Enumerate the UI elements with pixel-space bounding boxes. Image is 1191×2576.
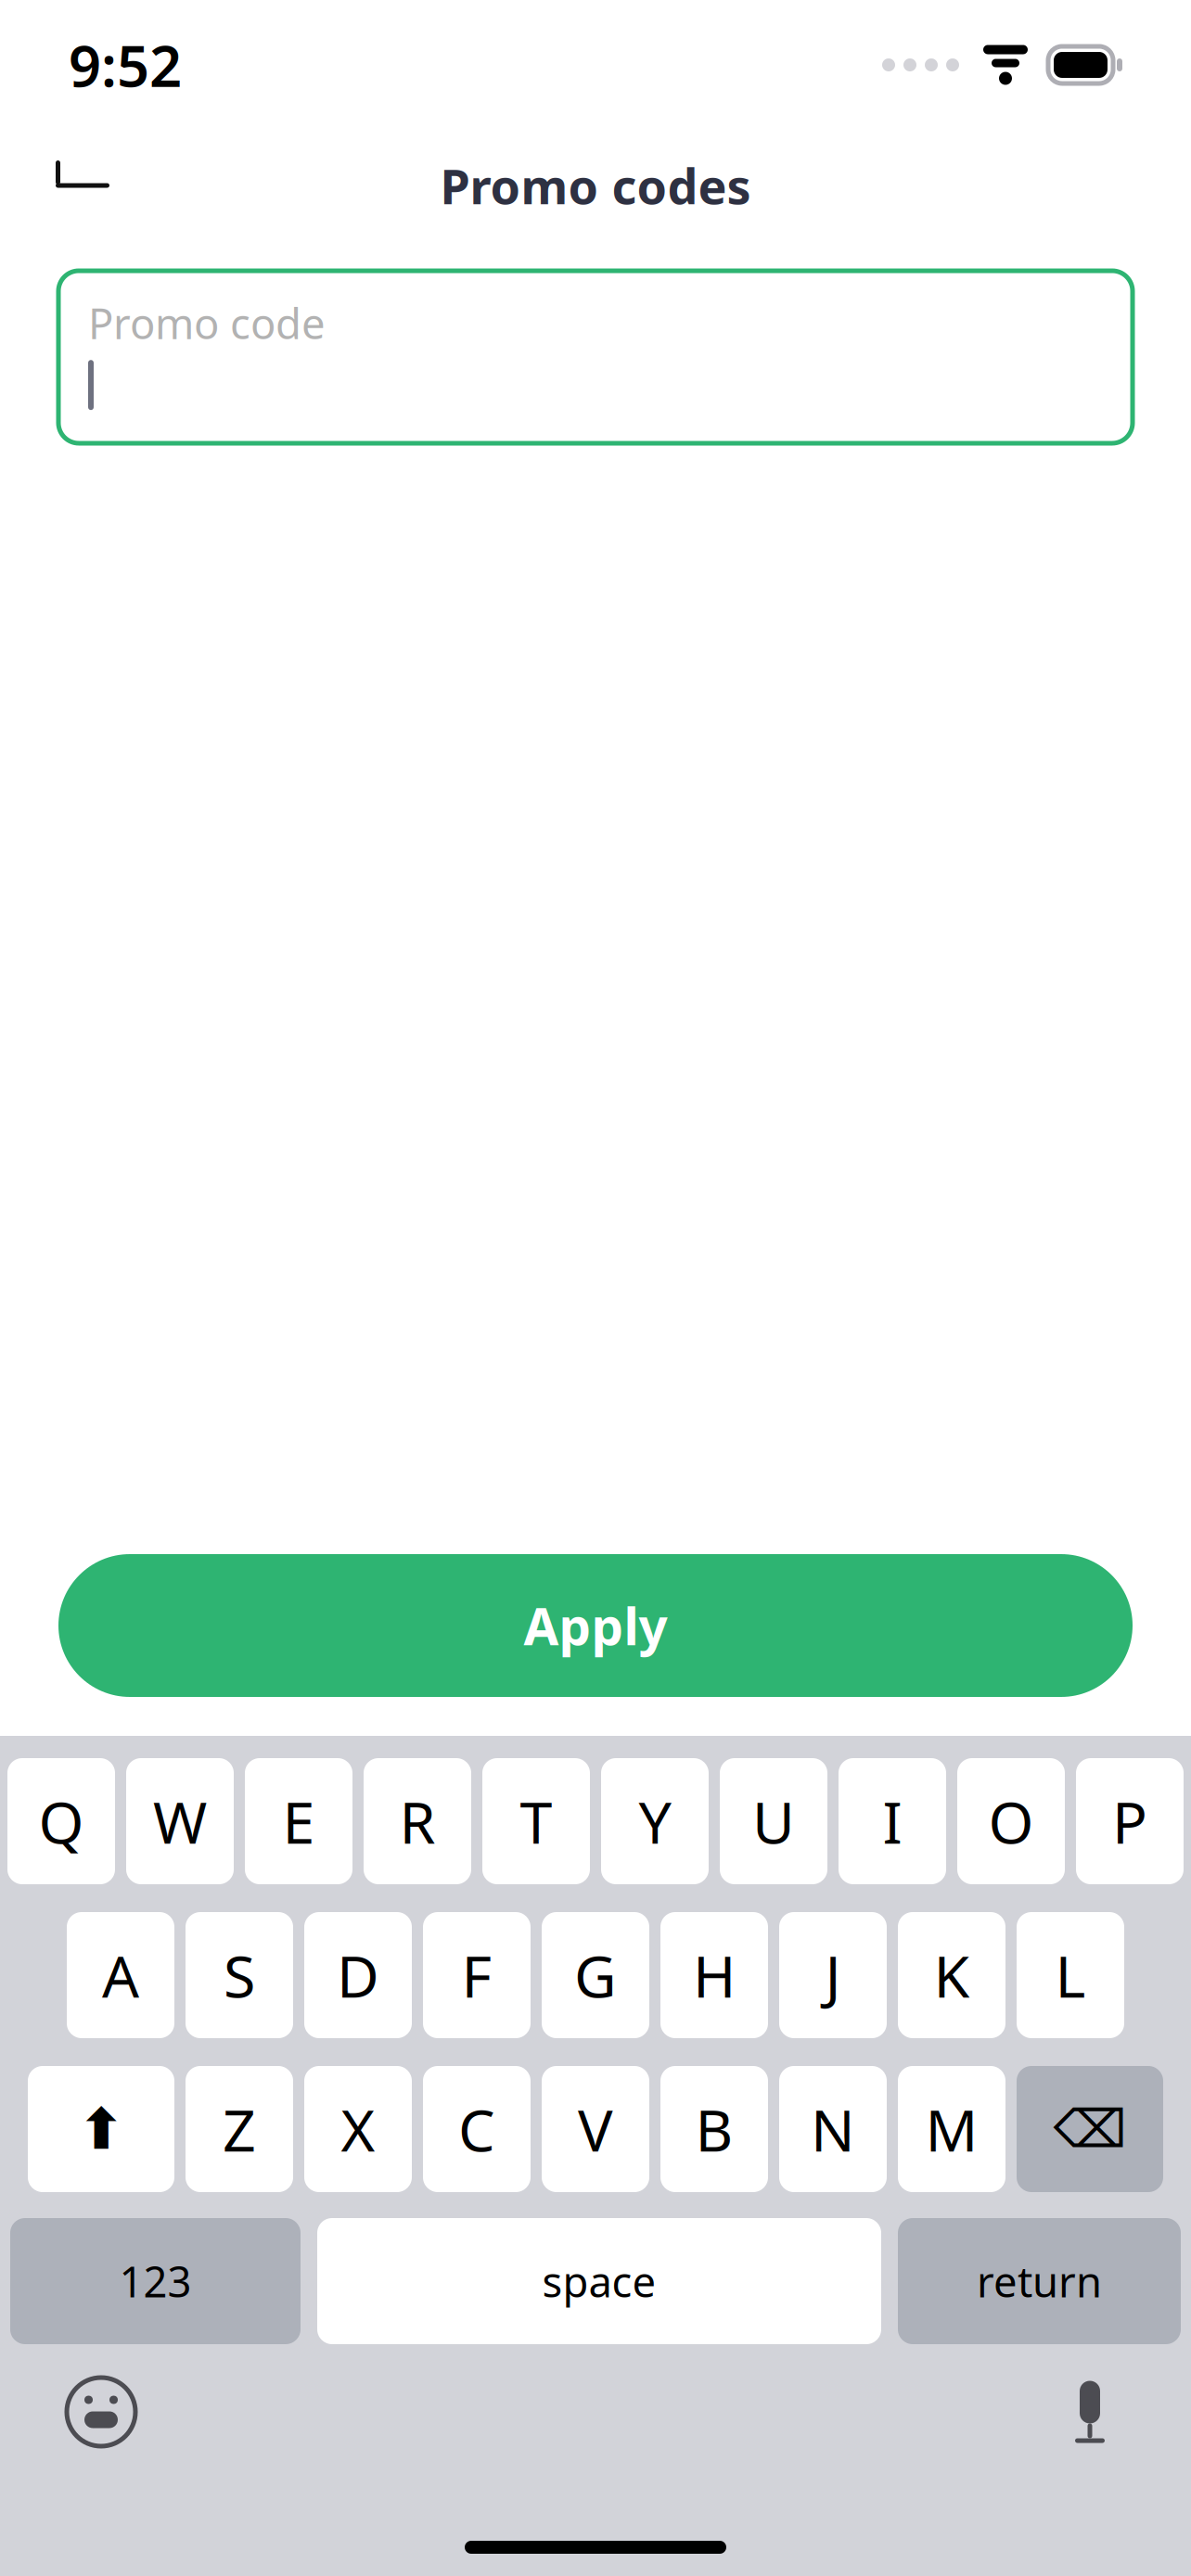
staticText: Y (639, 1783, 671, 1860)
button[interactable]: G (542, 1912, 649, 2038)
button[interactable]: T (482, 1758, 590, 1884)
button[interactable]: Emoji keyboard (50, 2361, 152, 2463)
button[interactable]: Back (39, 141, 134, 230)
button[interactable]: H (660, 1912, 768, 2038)
staticText: N (811, 2090, 855, 2168)
button[interactable]: J (779, 1912, 887, 2038)
button[interactable]: Delete (1017, 2066, 1163, 2192)
staticText: A (102, 1937, 139, 2014)
staticText: Promo codes (440, 153, 751, 218)
button[interactable]: return (898, 2218, 1181, 2344)
staticText: R (399, 1783, 435, 1860)
button[interactable]: P (1076, 1758, 1184, 1884)
staticText: C (458, 2090, 495, 2168)
staticText: M (925, 2090, 978, 2168)
button[interactable]: X (304, 2066, 412, 2192)
button[interactable]: U (720, 1758, 827, 1884)
button[interactable]: space (317, 2218, 881, 2344)
button[interactable]: Y (601, 1758, 709, 1884)
button[interactable]: S (186, 1912, 293, 2038)
staticText: W (153, 1783, 207, 1860)
staticText: G (574, 1937, 617, 2014)
button[interactable]: E (245, 1758, 352, 1884)
button[interactable]: V (542, 2066, 649, 2192)
button[interactable]: K (898, 1912, 1005, 2038)
staticText: T (520, 1783, 552, 1860)
staticText: E (282, 1783, 315, 1860)
button[interactable]: Apply (58, 1554, 1133, 1697)
staticText: V (578, 2090, 613, 2168)
staticText: O (988, 1783, 1034, 1860)
staticText: Apply (524, 1592, 667, 1659)
staticText: I (883, 1783, 902, 1860)
button[interactable]: N (779, 2066, 887, 2192)
staticText: X (341, 2090, 375, 2168)
staticText: space (542, 2253, 656, 2309)
button[interactable]: Q (7, 1758, 115, 1884)
button[interactable]: 123 (10, 2218, 301, 2344)
button[interactable]: B (660, 2066, 768, 2192)
staticText: Q (38, 1783, 84, 1860)
staticText: B (695, 2090, 733, 2168)
button[interactable]: Dictation (1039, 2361, 1141, 2463)
staticText: 9:52 (69, 27, 182, 103)
staticText: return (977, 2253, 1102, 2309)
staticText: U (752, 1783, 795, 1860)
staticText: 123 (119, 2253, 192, 2309)
staticText: L (1055, 1937, 1086, 2014)
button[interactable]: I (839, 1758, 946, 1884)
button[interactable]: O (957, 1758, 1065, 1884)
staticText: Z (223, 2090, 256, 2168)
staticText: D (337, 1937, 379, 2014)
staticText: P (1112, 1783, 1147, 1860)
button[interactable]: C (423, 2066, 531, 2192)
button[interactable]: Shift (28, 2066, 174, 2192)
button[interactable]: F (423, 1912, 531, 2038)
button[interactable]: M (898, 2066, 1005, 2192)
button[interactable]: L (1017, 1912, 1124, 2038)
button[interactable]: Promo code (58, 271, 1133, 443)
button[interactable]: A (67, 1912, 174, 2038)
staticText: F (461, 1937, 492, 2014)
staticText: ⌫ (1053, 2100, 1127, 2159)
button[interactable]: Z (186, 2066, 293, 2192)
staticText: S (224, 1937, 255, 2014)
staticText: ⬆ (77, 2097, 125, 2161)
staticText: Promo code (88, 295, 326, 351)
button[interactable]: D (304, 1912, 412, 2038)
staticText: J (825, 1937, 841, 2014)
staticText: K (934, 1937, 970, 2014)
button[interactable]: R (364, 1758, 471, 1884)
button[interactable]: W (126, 1758, 234, 1884)
staticText: H (693, 1937, 736, 2014)
